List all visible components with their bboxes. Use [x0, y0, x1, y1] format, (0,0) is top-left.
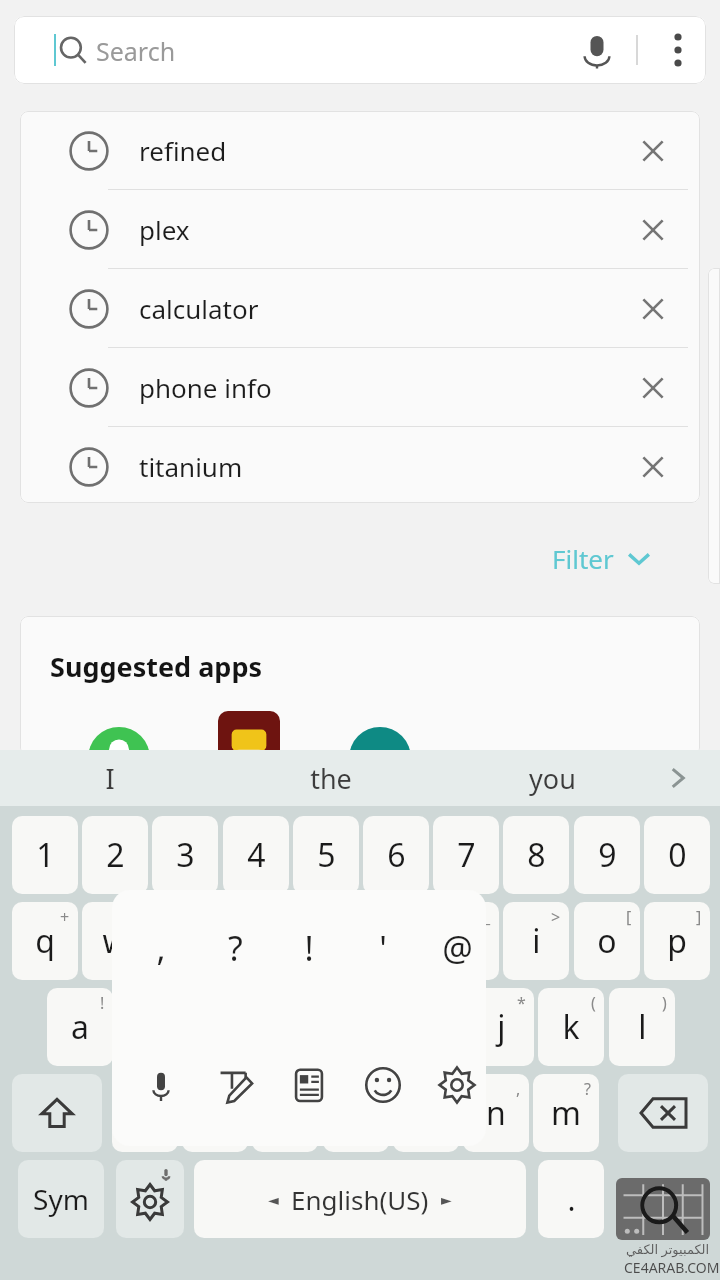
button[interactable]: l: [609, 988, 675, 1066]
button[interactable]: Voice input: [124, 1050, 198, 1120]
button[interactable]: 5: [293, 816, 359, 894]
button[interactable]: t: [293, 902, 359, 980]
button[interactable]: More options: [648, 28, 706, 72]
button[interactable]: ?: [198, 910, 272, 986]
staticText: *: [517, 992, 526, 1014]
button[interactable]: k: [538, 988, 604, 1066]
button[interactable]: y: [363, 902, 429, 980]
button[interactable]: i: [503, 902, 569, 980]
staticText: 0: [668, 833, 687, 877]
button[interactable]: 3: [152, 816, 218, 894]
button[interactable]: Voice search: [566, 28, 628, 72]
button[interactable]: .: [538, 1160, 604, 1238]
staticText: الكمبيوتر الكفي: [626, 1240, 710, 1258]
staticText: ): [662, 992, 667, 1014]
button[interactable]: More suggestions: [656, 756, 700, 800]
button[interactable]: Settings: [420, 1050, 486, 1120]
button[interactable]: Filter: [552, 533, 678, 583]
button[interactable]: Remove refined: [632, 130, 674, 172]
button[interactable]: j: [468, 988, 534, 1066]
button[interactable]: 2: [82, 816, 148, 894]
staticText: l: [638, 1005, 647, 1049]
button[interactable]: !: [272, 910, 346, 986]
button[interactable]: u: [433, 902, 499, 980]
staticText: English(US): [291, 1182, 429, 1217]
button[interactable]: Shift: [12, 1074, 102, 1152]
button[interactable]: Backspace: [618, 1074, 708, 1152]
button[interactable]: 1: [12, 816, 78, 894]
button[interactable]: plex: [20, 190, 700, 269]
button[interactable]: the: [241, 750, 421, 806]
button[interactable]: 4: [223, 816, 289, 894]
button[interactable]: p: [644, 902, 710, 980]
button[interactable]: v: [323, 1074, 389, 1152]
button[interactable]: calculator: [20, 269, 700, 348]
button[interactable]: Remove calculator: [632, 288, 674, 330]
button[interactable]: phone info: [20, 348, 700, 427]
staticText: +: [60, 906, 70, 928]
button[interactable]: Sym: [18, 1160, 104, 1238]
button[interactable]: Game app: [218, 711, 280, 756]
button[interactable]: Remove titanium: [632, 446, 674, 488]
button[interactable]: 6: [363, 816, 429, 894]
button[interactable]: x: [182, 1074, 248, 1152]
button[interactable]: n: [463, 1074, 529, 1152]
button[interactable]: ,: [124, 910, 198, 986]
button[interactable]: 0: [644, 816, 710, 894]
staticText: 7: [457, 833, 476, 877]
button[interactable]: 8: [503, 816, 569, 894]
button[interactable]: z: [112, 1074, 178, 1152]
button[interactable]: titanium: [20, 427, 700, 503]
button[interactable]: b: [393, 1074, 459, 1152]
button[interactable]: Remove phone info: [632, 367, 674, 409]
button[interactable]: Contacts app: [88, 727, 150, 756]
button[interactable]: w: [82, 902, 148, 980]
button[interactable]: you: [462, 750, 642, 806]
button[interactable]: a: [47, 988, 113, 1066]
button[interactable]: ◄: [194, 1160, 526, 1238]
staticText: ;: [376, 1078, 381, 1100]
button[interactable]: Remove plex: [632, 209, 674, 251]
staticText: Sym: [33, 1180, 89, 1218]
button[interactable]: Add app: [349, 727, 411, 756]
button[interactable]: c: [252, 1074, 318, 1152]
staticText: !: [304, 925, 314, 971]
button[interactable]: r: [223, 902, 289, 980]
button[interactable]: m: [533, 1074, 599, 1152]
button[interactable]: q: [12, 902, 78, 980]
staticText: p: [667, 919, 687, 963]
staticText: a: [71, 1005, 89, 1049]
staticText: [: [626, 906, 632, 928]
staticText: o: [597, 919, 617, 963]
staticText: refined: [139, 133, 227, 168]
button[interactable]: Emoji: [346, 1050, 420, 1120]
button[interactable]: Search: [14, 16, 706, 84]
staticText: calculator: [139, 291, 259, 326]
button[interactable]: 7: [433, 816, 499, 894]
button[interactable]: Handwriting: [198, 1050, 272, 1120]
button[interactable]: 9: [574, 816, 640, 894]
button[interactable]: e: [152, 902, 218, 980]
button[interactable]: Keyboard settings: [116, 1160, 184, 1238]
button[interactable]: refined: [20, 111, 700, 190]
button[interactable]: Clipboard: [272, 1050, 346, 1120]
button[interactable]: ': [346, 910, 420, 986]
button[interactable]: @: [420, 910, 486, 986]
button[interactable]: I: [20, 750, 200, 806]
staticText: /: [445, 1078, 451, 1100]
button[interactable]: o: [574, 902, 640, 980]
